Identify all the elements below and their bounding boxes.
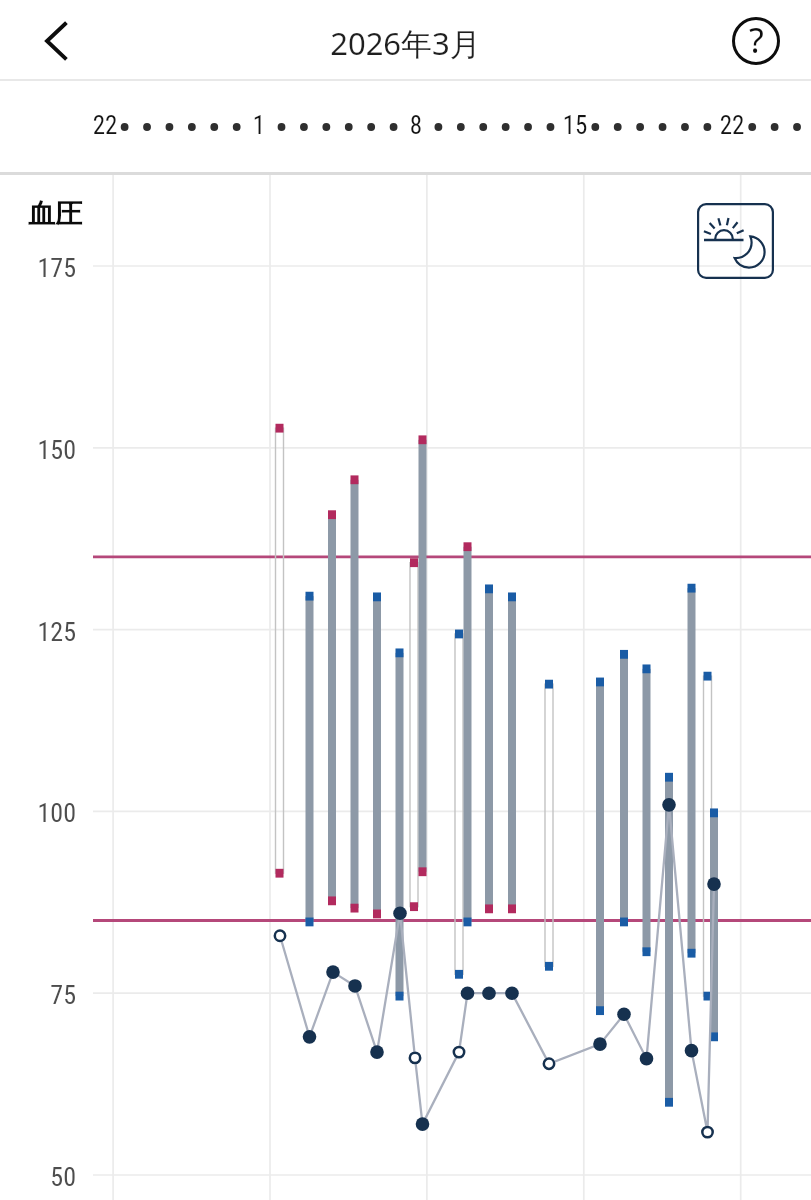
staticText: 22 (85, 111, 125, 140)
button[interactable]: Back (18, 11, 78, 71)
staticText: 1 (239, 111, 279, 140)
staticText: 150 (0, 435, 76, 465)
staticText: 125 (0, 617, 76, 647)
staticText: 100 (0, 798, 76, 828)
staticText: 2026年3月 (330, 22, 481, 64)
staticText: 8 (396, 111, 436, 140)
staticText: 175 (0, 253, 76, 283)
staticText: 22 (712, 111, 752, 140)
staticText: 75 (0, 980, 76, 1010)
staticText: 血圧 (28, 197, 82, 231)
button[interactable]: Toggle morning and evening readings (697, 203, 774, 279)
staticText: 50 (0, 1162, 76, 1192)
staticText: ? (749, 17, 764, 63)
staticText: 15 (555, 111, 595, 140)
button[interactable]: Help (732, 17, 780, 65)
